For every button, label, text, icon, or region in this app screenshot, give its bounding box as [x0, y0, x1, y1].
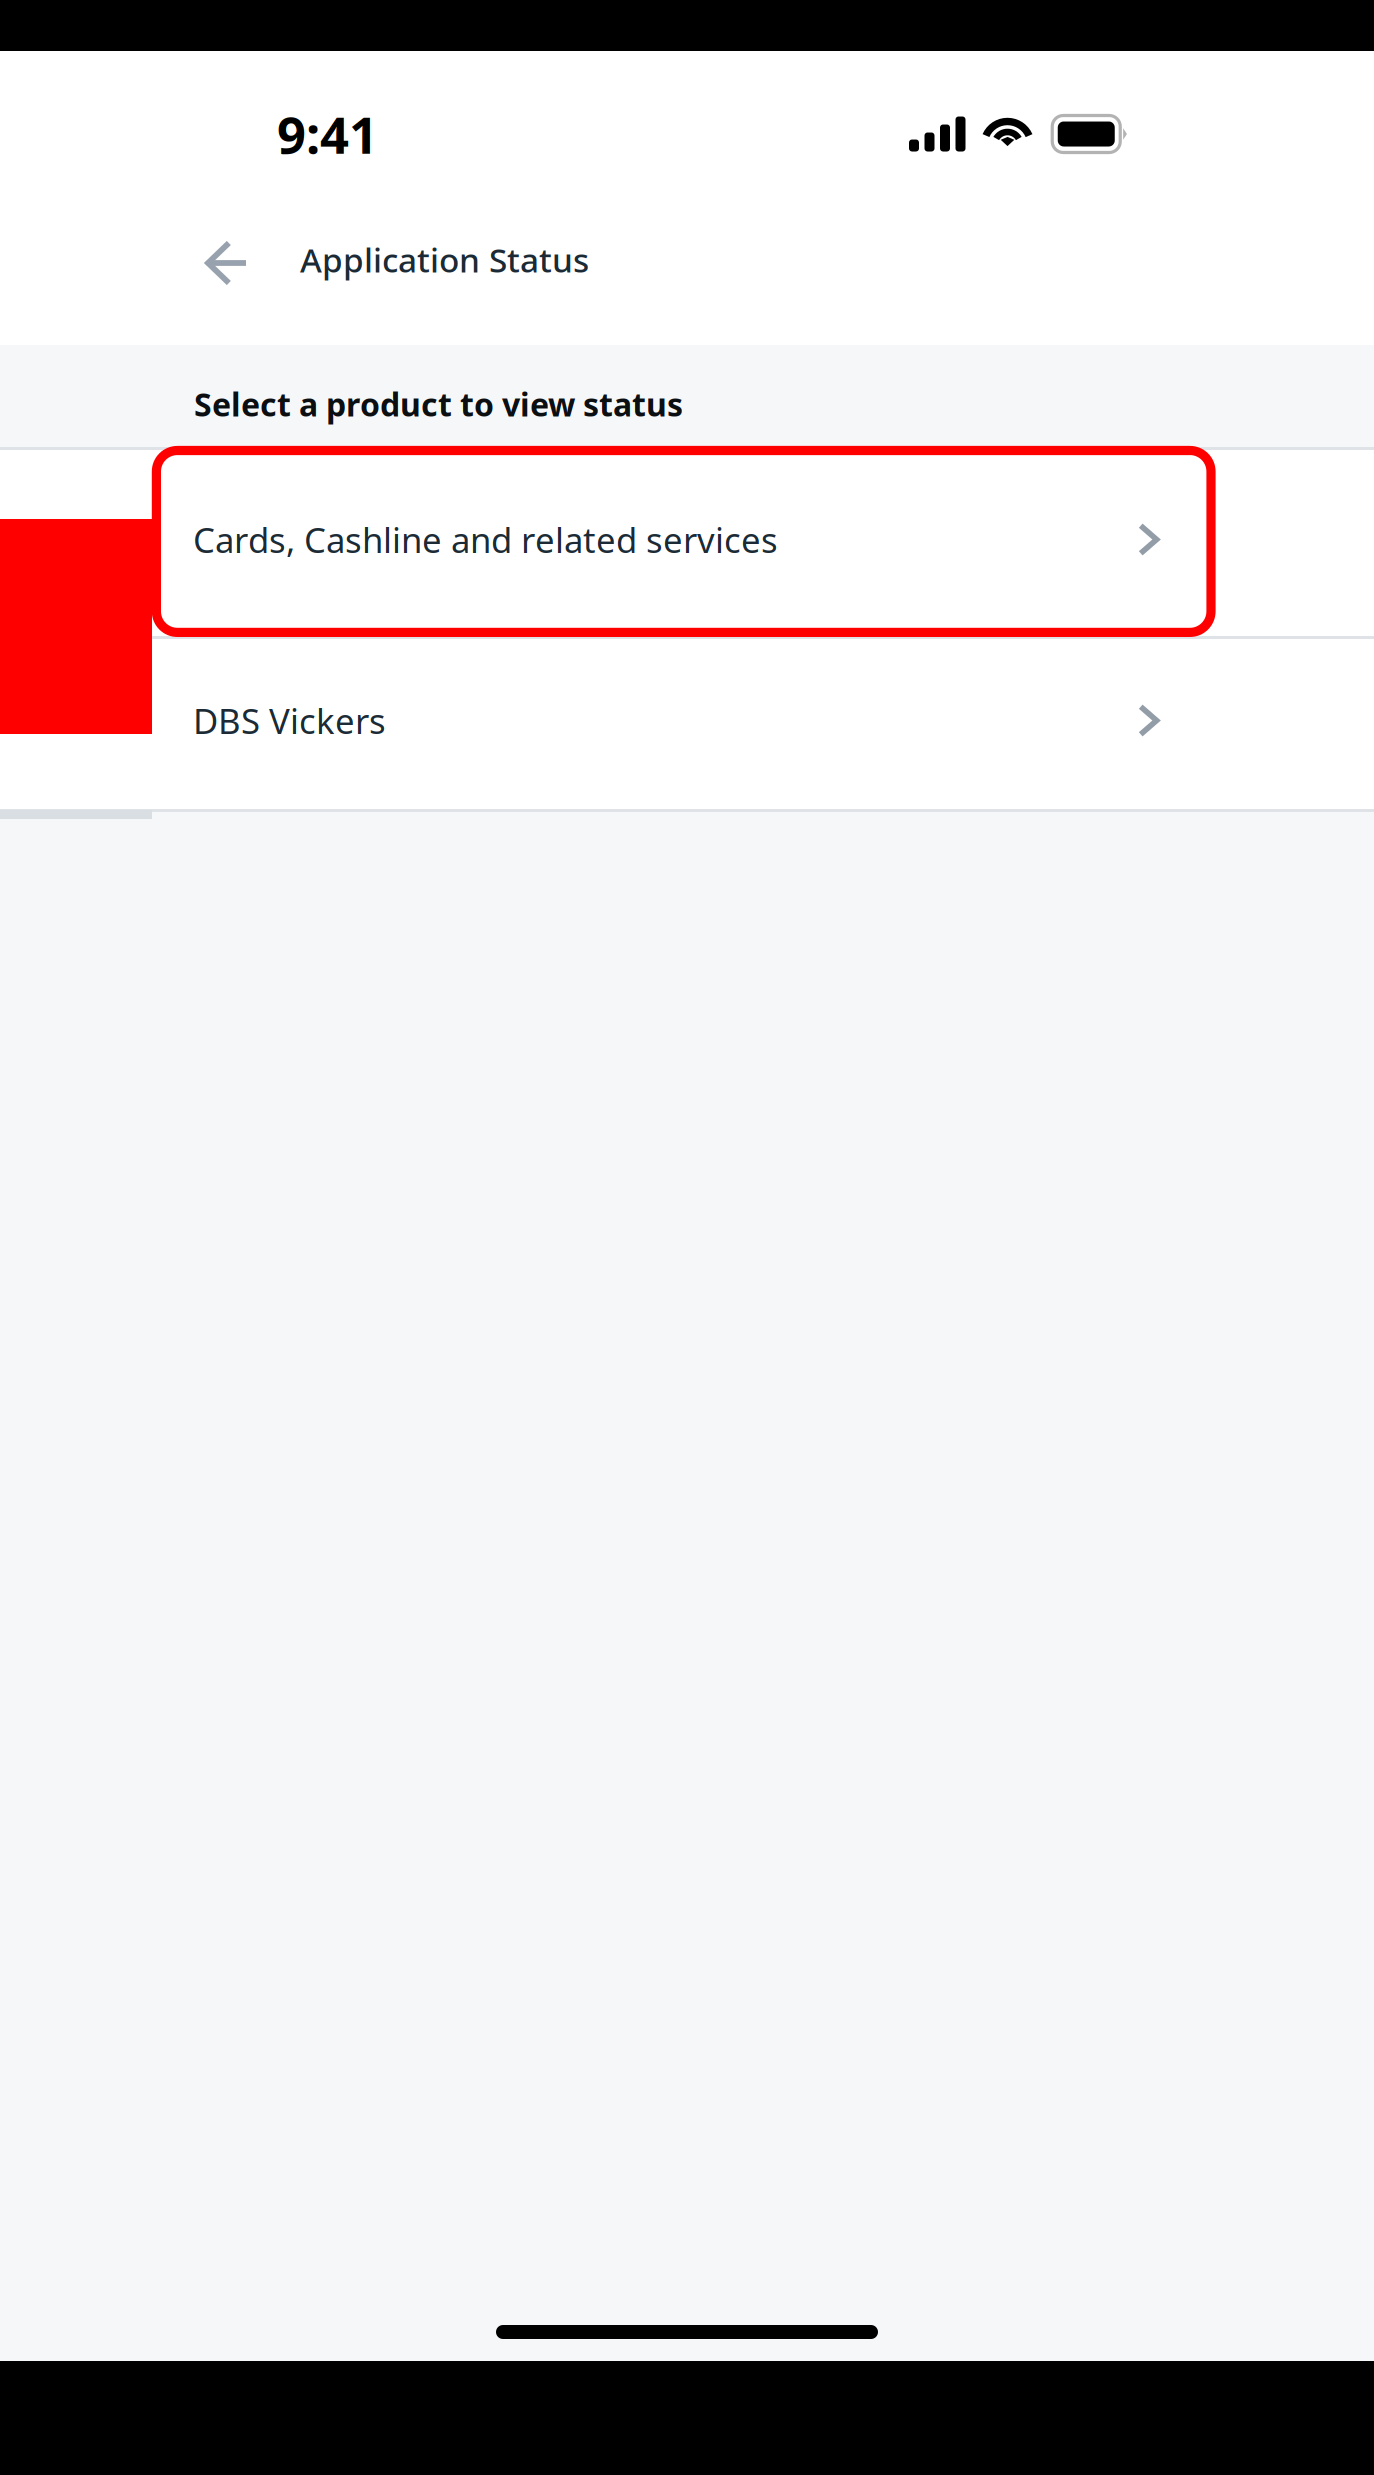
staticText: Cards, Cashline and related services [193, 516, 778, 562]
staticText: Select a product to view status [194, 383, 683, 425]
staticText: Application Status [300, 237, 589, 282]
staticText: DBS Vickers [193, 697, 386, 743]
staticText: 9:41 [277, 100, 378, 168]
button[interactable]: DBS Vickers [0, 639, 1374, 809]
button[interactable]: Cards, Cashline and related services [0, 450, 1374, 636]
button[interactable]: Back [181, 218, 271, 308]
